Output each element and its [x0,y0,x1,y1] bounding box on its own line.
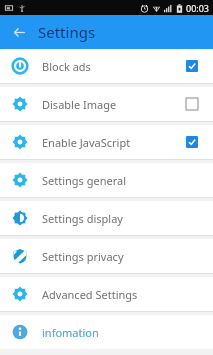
button[interactable]: Checked [181,131,203,153]
staticText: Settings [38,22,96,42]
staticText: Advanced Settings [42,287,203,302]
staticText: Enable JavaScript [42,135,181,150]
button[interactable]: Settings display [0,201,213,235]
button[interactable]: Advanced Settings [0,277,213,311]
staticText: Settings display [42,211,203,226]
button[interactable]: Settings privacy [0,239,213,273]
staticText: Settings general [42,173,203,188]
button[interactable]: Unchecked [181,93,203,115]
staticText: Block ads [42,59,181,74]
button[interactable]: Back [6,19,32,45]
button[interactable]: Settings general [0,163,213,197]
button[interactable]: Checked [181,55,203,77]
button[interactable]: Enable JavaScript [0,125,213,159]
button[interactable]: Block ads [0,49,213,83]
button[interactable]: Disable Image [0,87,213,121]
staticText: 00:03 [186,2,210,14]
button[interactable]: infomation [0,315,213,349]
staticText: Settings privacy [42,249,203,264]
staticText: infomation [42,325,203,340]
staticText: Disable Image [42,97,181,112]
